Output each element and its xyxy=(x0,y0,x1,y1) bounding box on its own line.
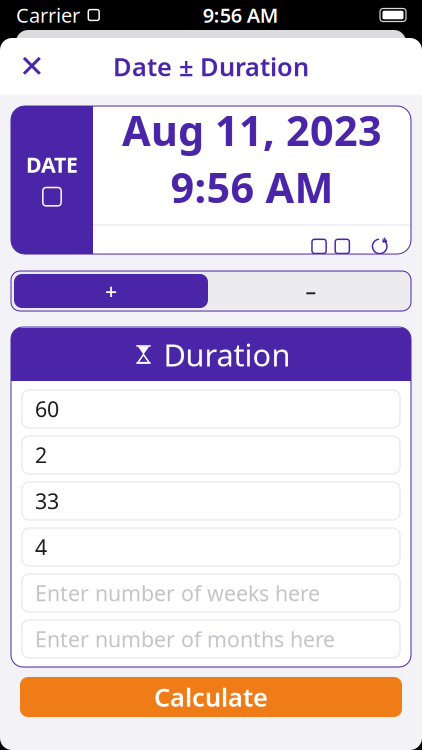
button[interactable]: Enter number of months here xyxy=(22,620,400,658)
staticText xyxy=(80,0,86,30)
staticText: Enter number of months here xyxy=(35,625,335,653)
button[interactable]: Enter number of weeks here xyxy=(22,574,400,612)
staticText: + xyxy=(105,277,117,305)
staticText: DATE xyxy=(26,150,78,178)
button[interactable]: 2 xyxy=(22,436,400,474)
button[interactable]: Pick date and time xyxy=(303,230,358,262)
staticText: Calculate xyxy=(154,680,268,714)
button[interactable]: Reset to now xyxy=(358,229,401,264)
staticText: 60 xyxy=(35,395,59,423)
staticText: 9:56 AM xyxy=(203,2,279,28)
staticText: Aug 11, 2023 xyxy=(122,103,382,157)
staticText: 33 xyxy=(35,487,59,515)
staticText: Date ± Duration xyxy=(113,50,309,83)
button[interactable]: Calculate xyxy=(20,677,402,717)
button[interactable]: + xyxy=(11,271,211,311)
staticText: 2 xyxy=(35,441,47,469)
staticText: 9:56 AM xyxy=(170,159,333,214)
staticText: ✕ xyxy=(19,49,45,84)
button[interactable]: Close xyxy=(10,44,54,88)
staticText: Carrier xyxy=(16,2,80,28)
staticText: – xyxy=(305,277,316,305)
button[interactable]: 33 xyxy=(22,482,400,520)
button[interactable]: 4 xyxy=(22,528,400,566)
button[interactable]: – xyxy=(211,271,411,311)
staticText: Enter number of weeks here xyxy=(35,579,320,607)
staticText: 4 xyxy=(35,533,47,561)
staticText: Duration xyxy=(163,334,290,375)
button[interactable]: 60 xyxy=(22,390,400,428)
